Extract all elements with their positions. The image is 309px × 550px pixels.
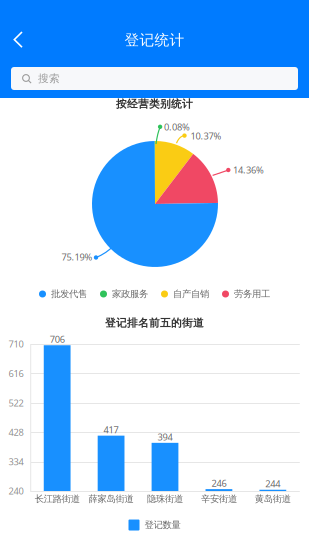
staticText: 黄岛街道 <box>255 493 291 505</box>
staticText: 75.19% <box>61 251 92 263</box>
staticText: 334 <box>8 455 23 468</box>
staticText: 按经营类别统计 <box>116 97 193 110</box>
staticText: 家政服务 <box>112 288 148 300</box>
staticText: 隐珠街道 <box>147 493 183 505</box>
staticText: 登记统计 <box>124 31 184 49</box>
staticText: 10.37% <box>190 130 221 142</box>
staticText: 登记数量 <box>144 519 180 531</box>
staticText: 244 <box>265 478 280 490</box>
button[interactable]: Back <box>0 0 44 56</box>
staticText: 417 <box>104 423 119 436</box>
staticText: 长江路街道 <box>35 493 80 505</box>
staticText: 自产自销 <box>173 288 209 300</box>
staticText: 0.08% <box>164 121 190 133</box>
staticText: 428 <box>8 426 23 438</box>
staticText: 240 <box>8 485 23 497</box>
staticText: 搜索 <box>38 72 60 85</box>
staticText: 登记排名前五的街道 <box>105 316 204 329</box>
staticText: 710 <box>8 338 23 350</box>
staticText: 14.36% <box>233 164 264 176</box>
staticText: 薛家岛街道 <box>89 493 134 505</box>
staticText: 劳务用工 <box>234 288 270 300</box>
staticText: 辛安街道 <box>201 493 237 505</box>
staticText: 394 <box>157 431 172 443</box>
staticText: 批发代售 <box>51 288 87 300</box>
staticText: 246 <box>211 477 226 489</box>
staticText: 706 <box>50 333 65 345</box>
staticText: 616 <box>8 367 23 380</box>
button[interactable]: 搜索 <box>11 67 298 90</box>
staticText: 522 <box>8 397 23 409</box>
